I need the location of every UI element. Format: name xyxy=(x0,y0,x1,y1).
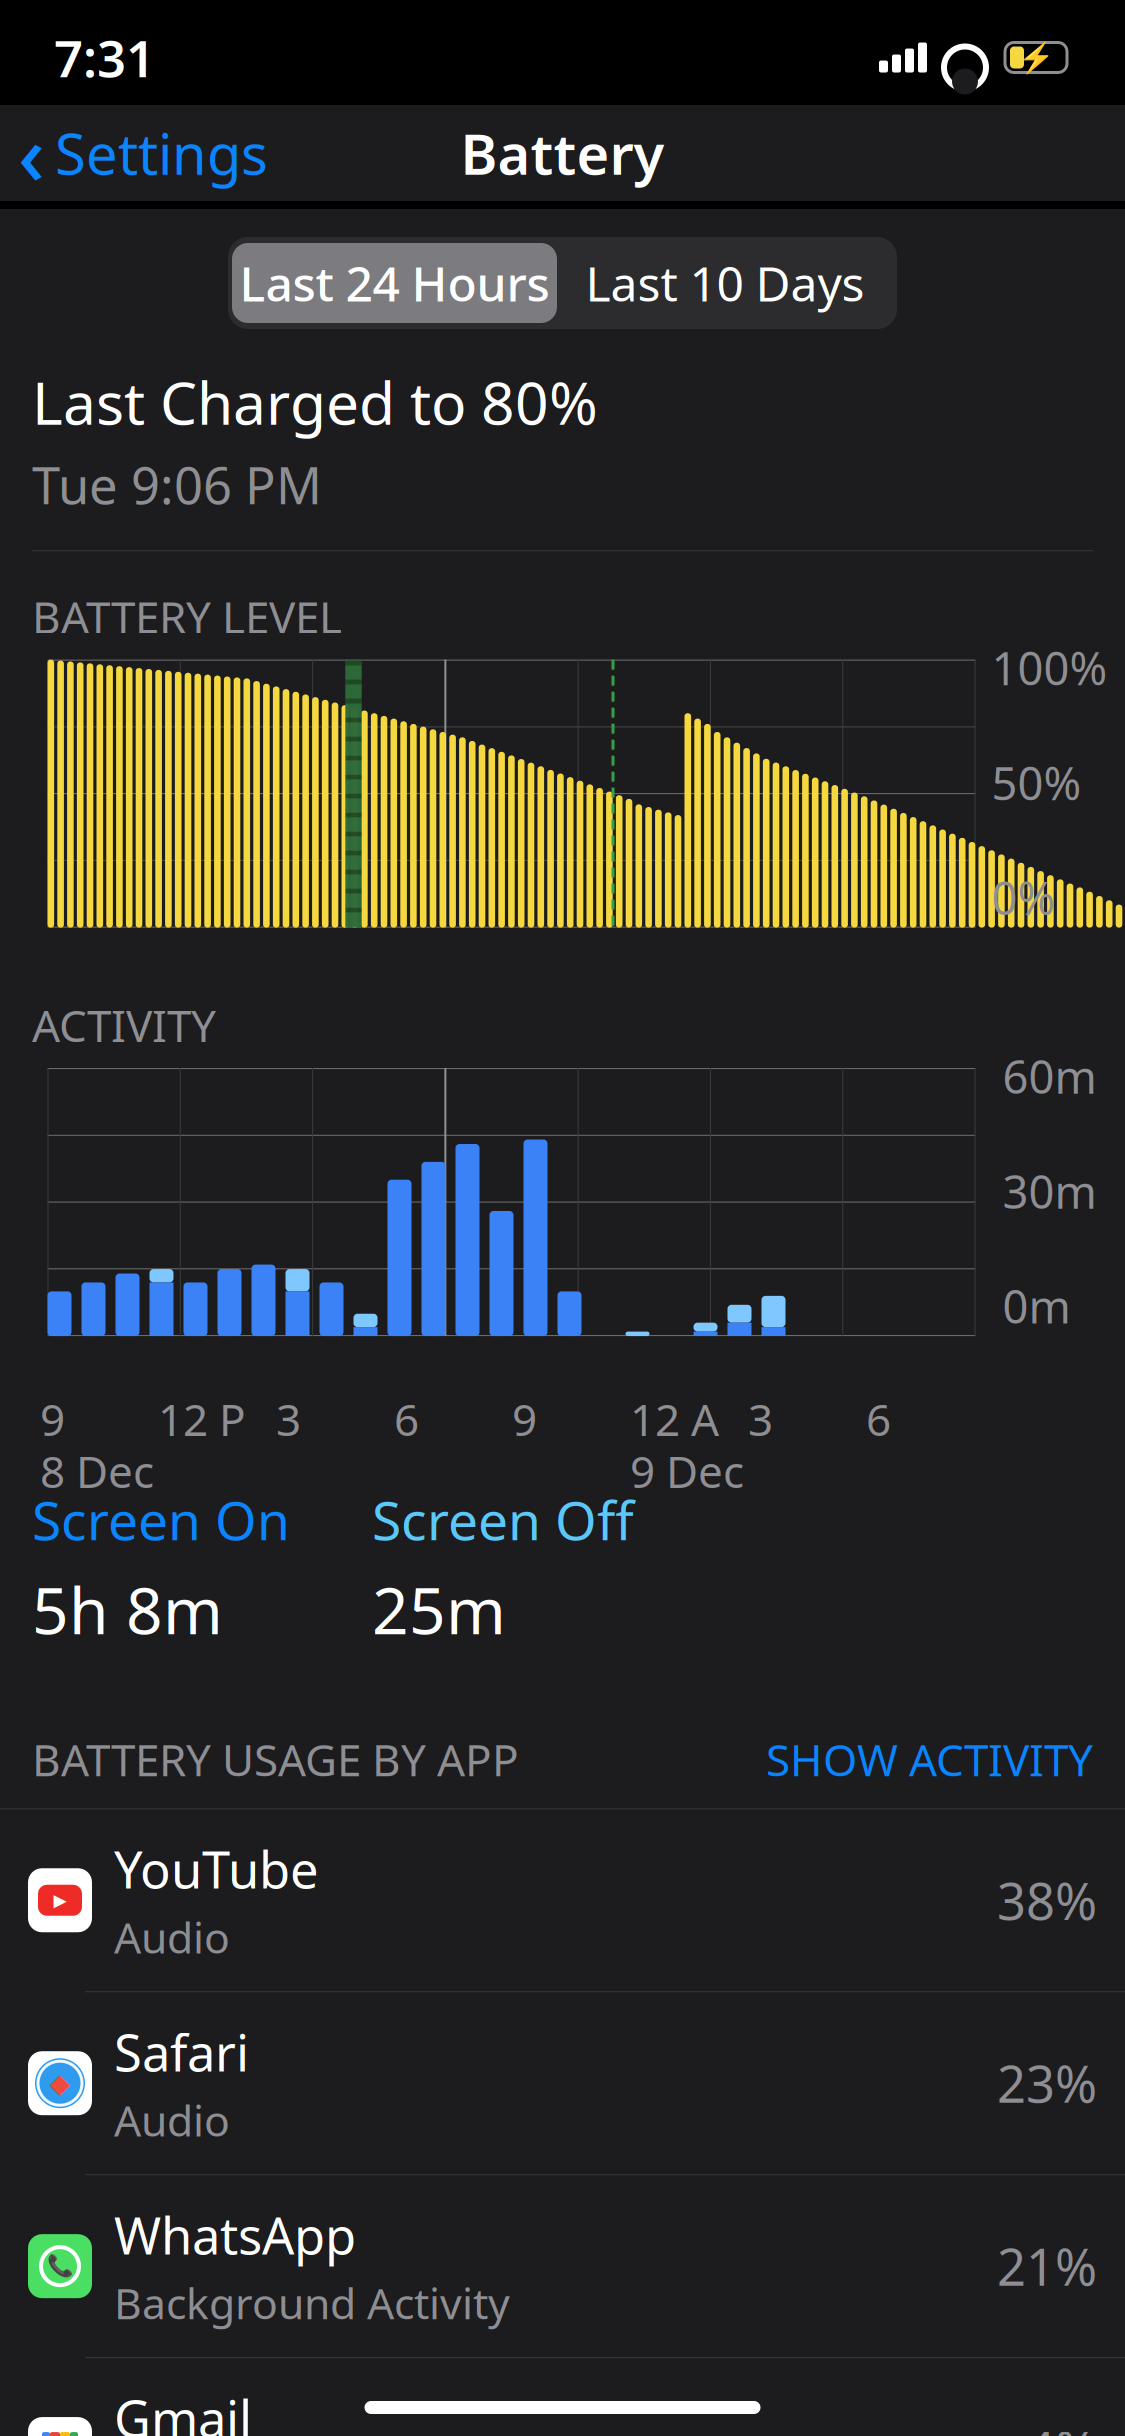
staticText: Gmail xyxy=(114,2384,252,2436)
button[interactable]: ▶ xyxy=(0,1809,1125,1991)
staticText: Screen Off xyxy=(372,1484,634,1555)
staticText: WhatsApp xyxy=(114,2201,356,2268)
staticText: Safari xyxy=(114,2018,249,2085)
staticText: 3 xyxy=(276,1390,301,1448)
staticText: 0m xyxy=(1002,1276,1070,1336)
staticText: ⚡ xyxy=(1017,41,1054,74)
staticText: 12 P xyxy=(158,1390,246,1448)
staticText: 7:31 xyxy=(54,24,155,91)
staticText: 5h 8m xyxy=(32,1567,223,1652)
staticText: 6 xyxy=(866,1390,891,1448)
staticText: Background Activity xyxy=(114,2274,510,2331)
button[interactable]: SHOW ACTIVITY xyxy=(766,1730,1093,1788)
staticText: Battery xyxy=(460,116,664,190)
button[interactable]: Last 24 Hours xyxy=(232,243,557,323)
staticText: Last 10 Days xyxy=(585,251,864,315)
staticText: 25m xyxy=(372,1567,506,1652)
staticText: ▶ xyxy=(53,1890,66,1910)
button[interactable]: Last 10 Days xyxy=(557,243,893,323)
button[interactable]: Gmail xyxy=(0,2357,1125,2436)
staticText: Tue 9:06 PM xyxy=(32,451,322,518)
staticText: 100% xyxy=(991,638,1107,698)
staticText: 21% xyxy=(997,2232,1097,2300)
staticText: BATTERY USAGE BY APP xyxy=(32,1730,519,1788)
staticText: Settings xyxy=(55,116,268,190)
staticText: 50% xyxy=(991,752,1081,813)
button[interactable]: ◆ xyxy=(0,1991,1125,2174)
staticText: BATTERY LEVEL xyxy=(32,587,342,646)
staticText: SHOW ACTIVITY xyxy=(766,1730,1093,1788)
staticText: 38% xyxy=(997,1867,1097,1934)
staticText: 30m xyxy=(1002,1161,1096,1221)
staticText: 60m xyxy=(1002,1046,1096,1106)
staticText: YouTube xyxy=(114,1835,319,1903)
staticText: 📞 xyxy=(46,2254,73,2278)
staticText: ‹ xyxy=(18,98,45,208)
staticText: 8 Dec xyxy=(40,1442,154,1500)
staticText: 23% xyxy=(997,2050,1097,2117)
staticText: ACTIVITY xyxy=(32,996,216,1054)
staticText: ◆ xyxy=(49,2068,70,2098)
button[interactable]: ‹ xyxy=(0,88,286,218)
staticText: Last Charged to 80% xyxy=(32,363,598,441)
staticText: 4% xyxy=(1026,2415,1097,2436)
staticText: 0% xyxy=(991,867,1055,928)
staticText: 9 xyxy=(40,1390,65,1448)
staticText: Audio xyxy=(114,1909,230,1965)
staticText: Last 24 Hours xyxy=(239,251,549,315)
staticText: 3 xyxy=(748,1390,773,1448)
staticText: 12 A xyxy=(630,1390,719,1448)
staticText: 6 xyxy=(394,1390,419,1448)
staticText: 9 Dec xyxy=(630,1442,744,1500)
button[interactable]: 📞 xyxy=(0,2174,1125,2357)
staticText: 9 xyxy=(512,1390,537,1448)
staticText: Screen On xyxy=(32,1484,290,1555)
staticText: Audio xyxy=(114,2091,230,2148)
